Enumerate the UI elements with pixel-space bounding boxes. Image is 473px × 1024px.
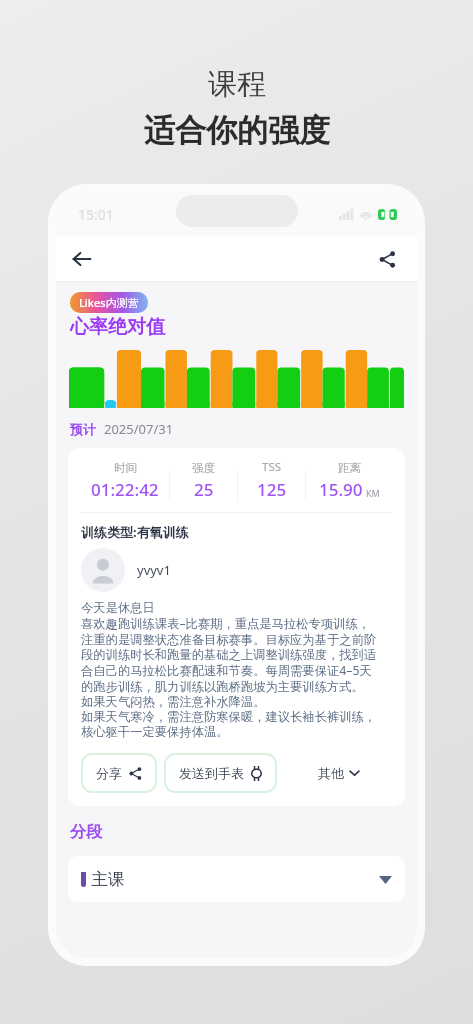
staticText: 发送到手表 [179,765,244,781]
staticText: 段的训练时长和跑量的基础之上调整训练强度，找到适 [81,647,377,662]
staticText: 15:01 [78,205,114,224]
staticText: 喜欢趣跑训练课表–比赛期，重点是马拉松专项训练， [81,615,370,632]
button[interactable]: 分享 [83,755,155,791]
staticText: 核心躯干一定要保持体温。 [81,724,229,739]
staticText: 如果天气寒冷，需注意防寒保暖，建议长袖长裤训练， [81,709,377,724]
button[interactable]: Likes内测营 [70,292,148,313]
staticText: 的跑步训练，肌力训练以跑桥跑坡为主要训练方式。 [81,679,364,694]
staticText: KM [366,487,380,499]
staticText: 距离 [338,461,361,475]
staticText: yvyv1 [137,561,171,579]
staticText: 今天是休息日 [81,600,155,615]
button[interactable]: 发送到手表 [166,755,275,791]
button[interactable]: Share [369,241,405,277]
staticText: 注重的是调整状态准备目标赛事。目标应为基于之前阶 [81,632,377,647]
staticText: 预计 [70,421,96,437]
button[interactable]: 主课 [68,856,405,902]
staticText: 时间 [114,461,137,475]
staticText: Likes内测营 [79,295,139,310]
staticText: 分段 [70,822,102,842]
staticText: 25 [194,478,214,501]
staticText: 分享 [96,765,122,781]
staticText: 训练类型:有氧训练 [81,523,189,541]
staticText: 主课 [91,869,125,890]
staticText: 01:22:42 [91,478,159,501]
staticText: 合自己的马拉松比赛配速和节奏。每周需要保证4–5天 [81,662,372,679]
staticText: TSS [262,459,282,475]
staticText: 强度 [192,461,215,475]
staticText: 如果天气闷热，需注意补水降温。 [81,694,266,709]
staticText: 适合你的强度 [144,111,330,150]
button[interactable]: 其他 [284,754,392,792]
staticText: 125 [257,478,287,501]
staticText: 其他 [318,765,344,781]
button[interactable]: Back [64,241,100,277]
staticText: 心率绝对值 [70,315,165,339]
staticText: 2025/07/31 [104,420,174,438]
staticText: 课程 [208,66,266,103]
staticText: 15.90 [319,478,363,501]
